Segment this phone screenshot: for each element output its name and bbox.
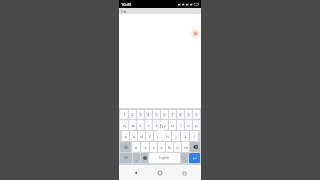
button[interactable]: 4 <box>145 110 152 119</box>
staticText: q <box>123 123 126 128</box>
button[interactable]: h <box>163 131 171 141</box>
button[interactable]: 1 <box>120 110 128 119</box>
staticText: l <box>193 134 195 139</box>
staticText: v <box>160 145 163 150</box>
staticText: j <box>175 134 177 139</box>
button[interactable]: Backspace <box>190 142 200 152</box>
staticText: p <box>195 123 198 128</box>
button[interactable]: 6 <box>161 110 168 119</box>
button[interactable]: z <box>132 142 140 152</box>
button[interactable]: Shift <box>120 142 131 152</box>
button[interactable]: 2 <box>129 110 136 119</box>
staticText: 7 <box>171 112 174 117</box>
button[interactable]: 9 <box>185 110 192 119</box>
staticText: f <box>149 134 151 139</box>
staticText: s <box>133 134 135 139</box>
button[interactable]: 3 <box>137 110 144 119</box>
button[interactable]: p <box>193 120 200 130</box>
button[interactable]: v <box>158 142 165 152</box>
staticText: u <box>171 123 174 128</box>
staticText: 3 <box>139 112 142 117</box>
button[interactable]: i <box>177 120 184 130</box>
staticText: r <box>148 123 150 128</box>
button[interactable]: Emoji <box>141 153 148 163</box>
button[interactable]: English <box>149 153 180 163</box>
button[interactable]: g <box>154 131 162 141</box>
staticText: !#1 <box>124 156 129 160</box>
button[interactable]: q <box>120 120 128 130</box>
button[interactable]: 5 <box>153 110 160 119</box>
button[interactable]: m <box>182 142 189 152</box>
button[interactable]: c <box>150 142 157 152</box>
staticText: 4 <box>147 112 150 117</box>
staticText: English <box>159 156 170 160</box>
button[interactable]: k <box>181 131 189 141</box>
button[interactable]: Recents <box>177 167 191 179</box>
staticText: h <box>166 134 169 139</box>
staticText: x <box>144 145 147 150</box>
staticText: k <box>184 134 187 139</box>
staticText: 8 <box>179 112 182 117</box>
staticText: 0 <box>195 112 198 117</box>
staticText: w <box>131 123 135 128</box>
button[interactable]: 8 <box>177 110 184 119</box>
staticText: z <box>135 145 137 150</box>
button[interactable]: b <box>166 142 173 152</box>
staticText: h <box>160 123 163 129</box>
staticText: n <box>176 145 179 150</box>
staticText: 6 <box>163 112 166 117</box>
button[interactable]: d <box>138 131 145 141</box>
staticText: . <box>184 156 186 161</box>
button[interactable]: l <box>190 131 198 141</box>
staticText: 10:45 <box>121 2 132 7</box>
button[interactable]: u <box>169 120 176 130</box>
button[interactable]: n <box>174 142 181 152</box>
staticText: 5 <box>155 112 158 117</box>
staticText: i <box>180 123 182 128</box>
staticText: , <box>136 156 138 161</box>
button[interactable]: a <box>122 131 129 141</box>
staticText: o <box>187 123 190 128</box>
staticText: 2 <box>131 112 134 117</box>
button[interactable]: t <box>153 120 160 130</box>
staticText: a <box>124 134 127 139</box>
button[interactable]: 0 <box>193 110 200 119</box>
button[interactable]: x <box>141 142 149 152</box>
button[interactable]: j <box>172 131 180 141</box>
staticText: 9 <box>187 112 190 117</box>
button[interactable]: y <box>161 120 168 130</box>
staticText: t <box>156 123 158 128</box>
button[interactable]: o <box>185 120 192 130</box>
button[interactable]: w <box>129 120 136 130</box>
button[interactable]: s <box>130 131 137 141</box>
button[interactable]: Symbols <box>120 153 132 163</box>
staticText: File <box>121 9 127 14</box>
button[interactable]: e <box>137 120 144 130</box>
staticText: y <box>163 123 166 128</box>
staticText: e <box>139 123 142 128</box>
staticText: d <box>140 134 143 139</box>
button[interactable]: Home <box>153 167 167 179</box>
staticText: m <box>184 145 188 150</box>
button[interactable]: f <box>146 131 153 141</box>
staticText: 1 <box>123 112 126 117</box>
button[interactable]: 7 <box>169 110 176 119</box>
button[interactable]: r <box>145 120 152 130</box>
button[interactable]: Back <box>129 167 143 179</box>
button[interactable]: Enter <box>189 153 200 163</box>
staticText: g <box>157 134 160 139</box>
staticText: b <box>168 145 171 150</box>
button[interactable]: File <box>119 8 201 14</box>
staticText: c <box>153 145 155 150</box>
button[interactable]: Comma <box>133 153 140 163</box>
